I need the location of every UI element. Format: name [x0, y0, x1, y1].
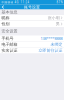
staticText: 安全设置 — [2, 29, 18, 34]
staticText: 未绑定 — [50, 42, 62, 47]
staticText: 电子邮箱 — [2, 42, 18, 47]
staticText: 中国移动 4G 11:24 — [2, 0, 30, 4]
button[interactable]: 实名认证 — [0, 47, 64, 53]
staticText: 87% — [56, 0, 62, 4]
staticText: 138****8888 — [40, 36, 62, 41]
button[interactable]: 手机号 — [0, 35, 64, 41]
staticText: 男 — [56, 21, 60, 26]
staticText: 张小明 — [48, 15, 60, 20]
staticText: 手机号 — [2, 36, 14, 41]
button[interactable]: 性别 — [0, 21, 64, 27]
staticText: 账号设置 — [24, 5, 40, 9]
staticText: 基本信息 — [2, 10, 18, 15]
staticText: 昵称 — [2, 15, 10, 20]
button[interactable]: Back — [0, 5, 6, 9]
staticText: 立即前往认证 — [38, 48, 62, 53]
staticText: 性别 — [2, 21, 10, 26]
button[interactable]: 昵称 — [0, 15, 64, 21]
button[interactable]: 电子邮箱 — [0, 41, 64, 47]
staticText: 实名认证 — [2, 48, 18, 53]
